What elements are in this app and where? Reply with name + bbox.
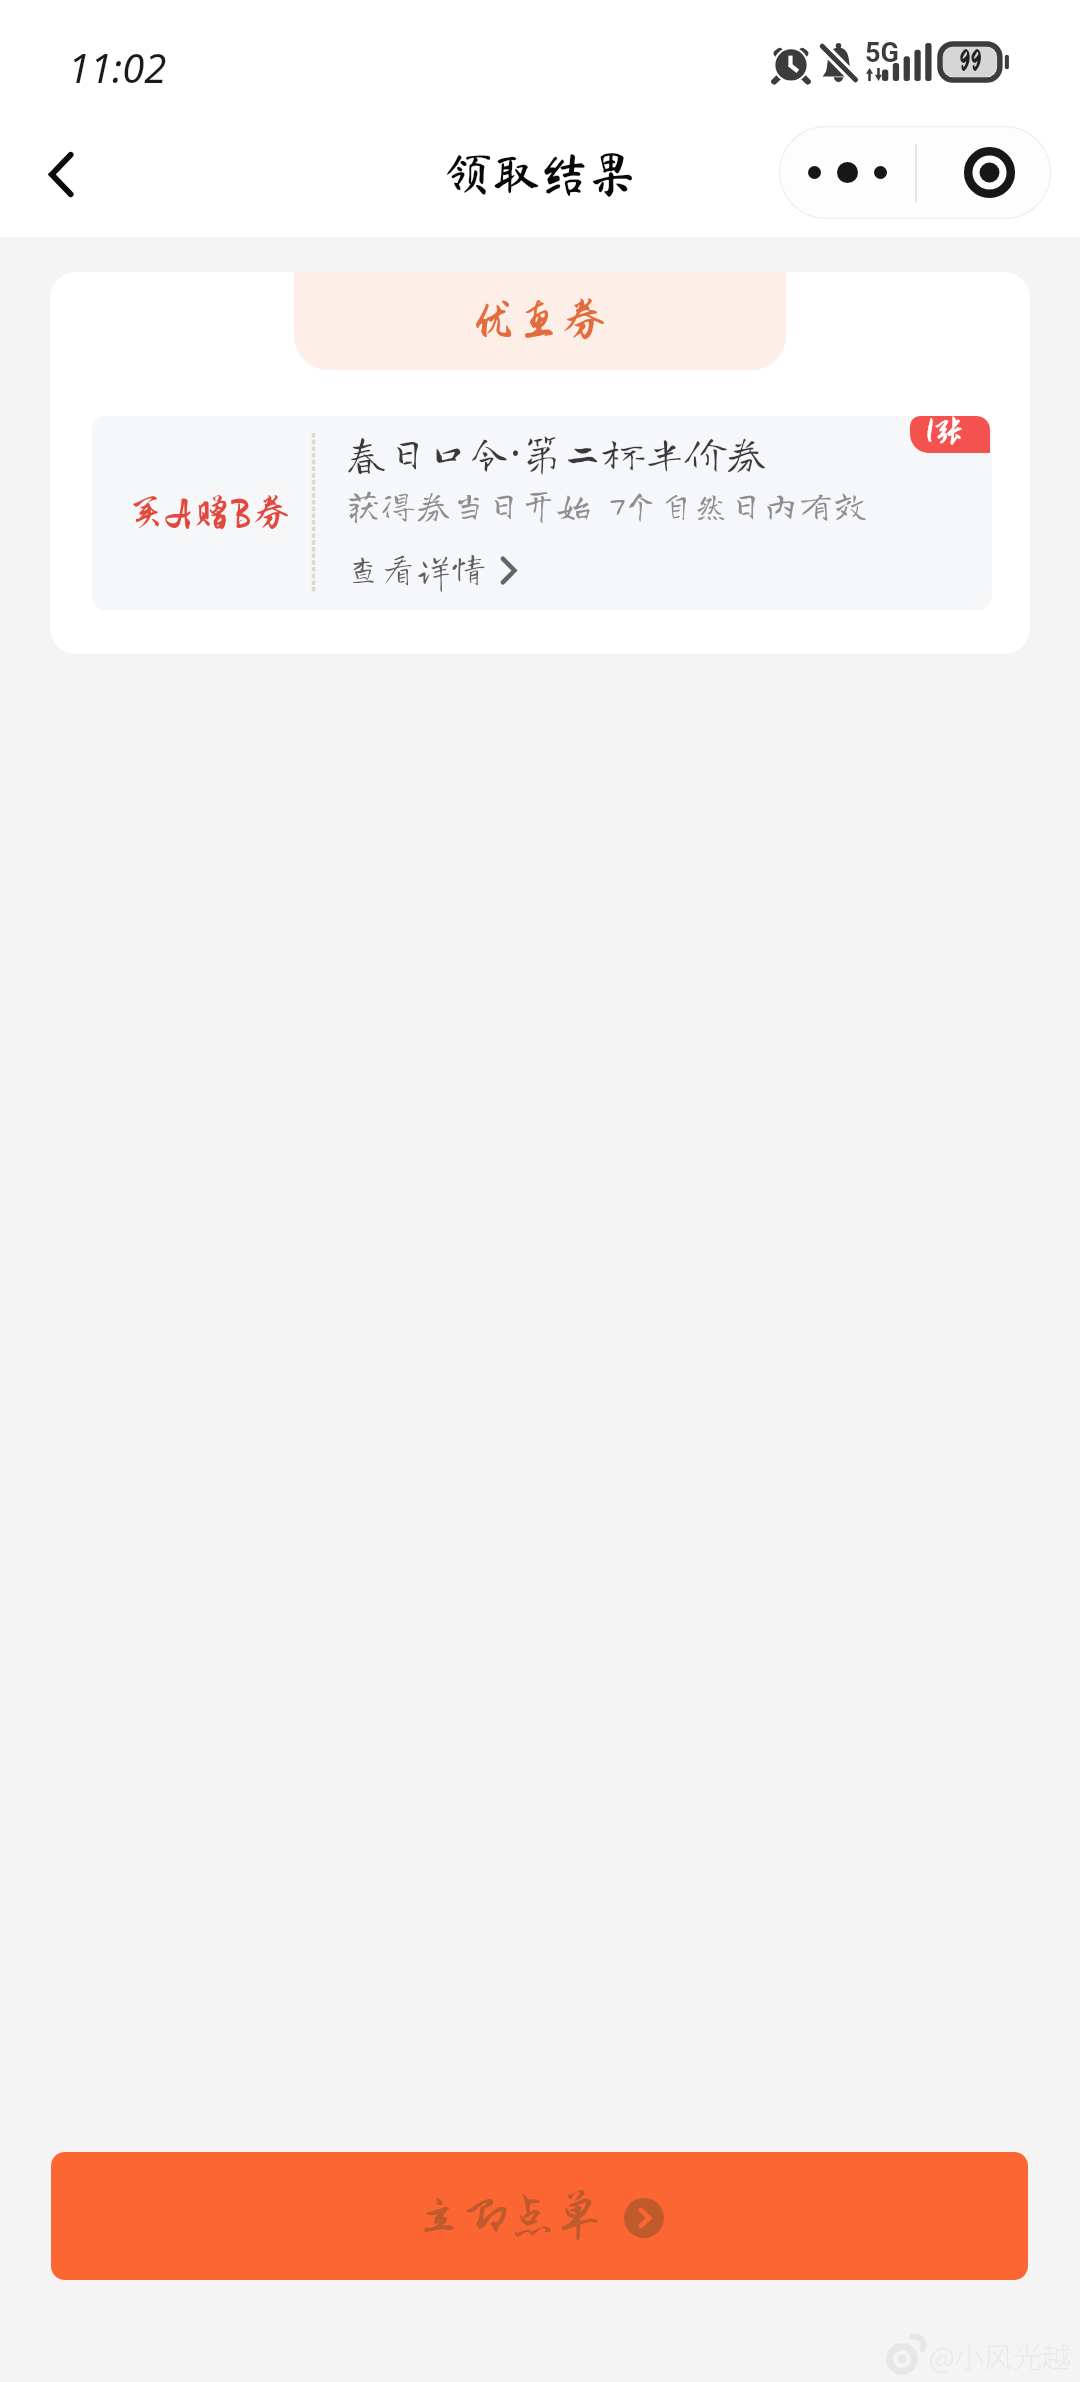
staticText: 11:02 — [68, 40, 167, 94]
staticText: 优惠券 — [472, 296, 608, 344]
button[interactable]: Back — [16, 127, 106, 221]
staticText: 领取结果 — [444, 150, 637, 198]
button[interactable]: 查看详情 — [346, 550, 516, 585]
button[interactable]: More options — [779, 126, 915, 219]
staticText: @小风光越 — [929, 2334, 1071, 2376]
button[interactable]: 买A赠B券 — [92, 416, 992, 610]
staticText: 查看详情 — [346, 550, 487, 585]
button[interactable]: Close mini program — [915, 126, 1051, 219]
staticText: 买A赠B券 — [128, 493, 292, 533]
staticText: 春日口令·第二杯半价券 — [346, 424, 767, 480]
staticText: 1张 — [926, 416, 964, 448]
staticText: 获得券当日开始 7个自然日内有效 — [346, 487, 869, 522]
staticText: 99 — [959, 46, 982, 76]
button[interactable]: 立即点单 — [51, 2152, 1028, 2280]
staticText: 5G — [865, 37, 899, 69]
staticText: 立即点单 — [416, 2190, 604, 2242]
